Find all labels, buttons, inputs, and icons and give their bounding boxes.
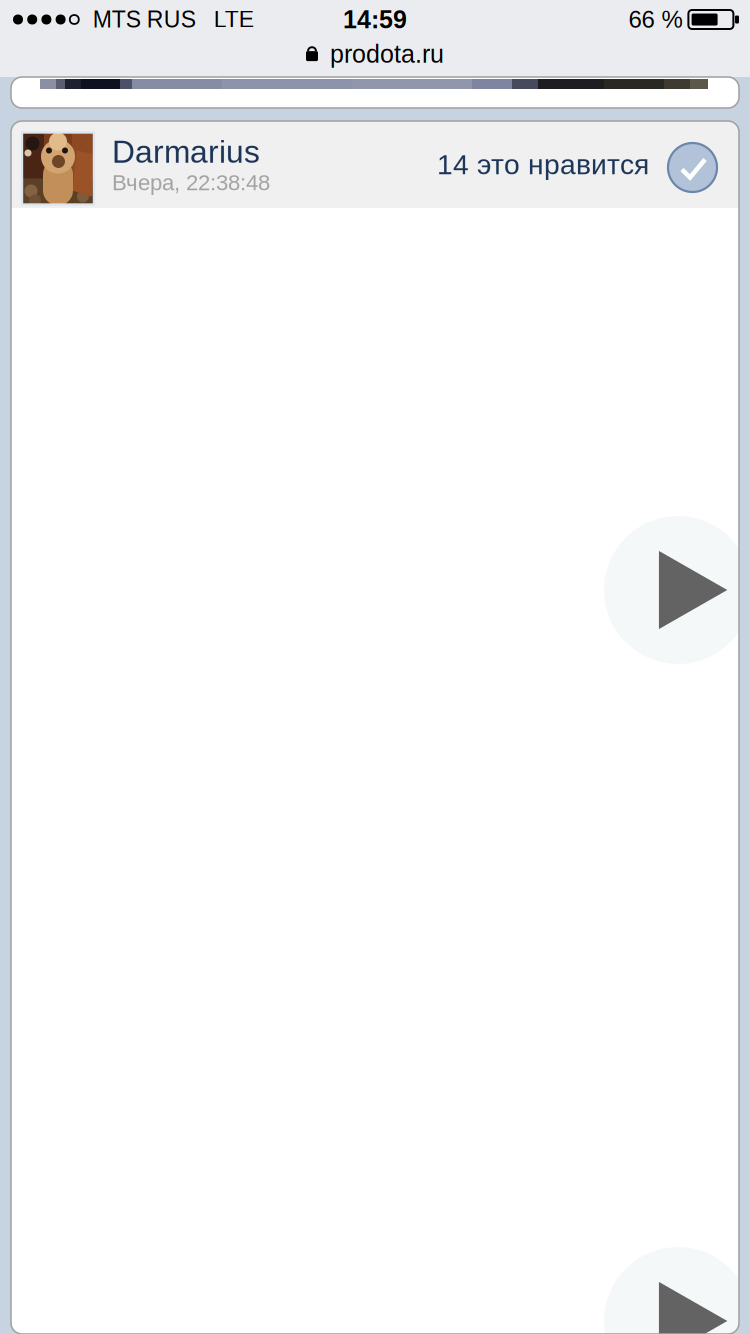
button[interactable]: prodota.ru <box>0 39 750 77</box>
staticText: prodota.ru <box>330 40 444 68</box>
staticText: MTS RUS <box>93 7 196 32</box>
staticText: LTE <box>214 7 254 32</box>
button[interactable]: Play video <box>604 1247 750 1334</box>
staticText: 14:59 <box>343 5 407 33</box>
button[interactable]: Play video <box>604 516 750 664</box>
button[interactable]: Liked <box>667 142 718 193</box>
staticText: Darmarius <box>112 134 260 169</box>
staticText: Вчера, 22:38:48 <box>112 170 270 195</box>
staticText: 66 % <box>628 6 682 33</box>
staticText: 14 это нравится <box>437 149 649 180</box>
